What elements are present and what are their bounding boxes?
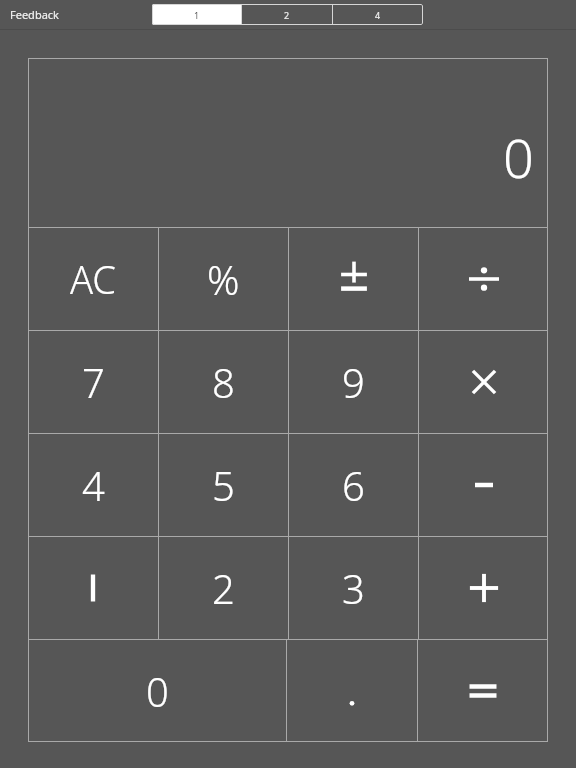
button[interactable]: Subtract (419, 434, 548, 536)
staticText: 0 (146, 664, 169, 718)
button[interactable]: 4 (28, 434, 158, 536)
button[interactable]: Decimal point (287, 640, 417, 742)
staticText: 9 (342, 355, 365, 409)
button[interactable]: 6 (289, 434, 418, 536)
button[interactable]: Toggle sign (289, 228, 418, 330)
staticText: 2 (284, 9, 290, 21)
staticText: 4 (375, 9, 381, 21)
staticText: 6 (342, 458, 365, 512)
button[interactable]: Add (419, 537, 548, 639)
button[interactable]: Feedback (10, 7, 59, 22)
button[interactable]: 1 (28, 537, 158, 639)
button[interactable]: Divide (419, 228, 548, 330)
staticText: 1 (194, 9, 200, 21)
staticText: 8 (212, 355, 235, 409)
staticText: 0 (503, 120, 534, 194)
staticText: 4 (82, 458, 105, 512)
button[interactable]: 3 (289, 537, 418, 639)
button[interactable]: 1 (152, 4, 241, 25)
button[interactable]: Multiply (419, 331, 548, 433)
button[interactable]: 0 (28, 640, 286, 742)
button[interactable]: Equals (418, 640, 548, 742)
staticText: 5 (212, 458, 235, 512)
staticText: 7 (82, 355, 105, 409)
button[interactable]: 8 (159, 331, 288, 433)
button[interactable]: 5 (159, 434, 288, 536)
button[interactable]: 2 (159, 537, 288, 639)
button[interactable]: 7 (28, 331, 158, 433)
staticText: 3 (342, 561, 365, 615)
staticText: AC (70, 253, 117, 305)
button[interactable]: % (159, 228, 288, 330)
button[interactable]: AC (28, 228, 158, 330)
staticText: 2 (212, 561, 235, 615)
button[interactable]: 4 (333, 4, 423, 25)
staticText: % (207, 252, 240, 306)
button[interactable]: 9 (289, 331, 418, 433)
button[interactable]: 2 (242, 4, 332, 25)
